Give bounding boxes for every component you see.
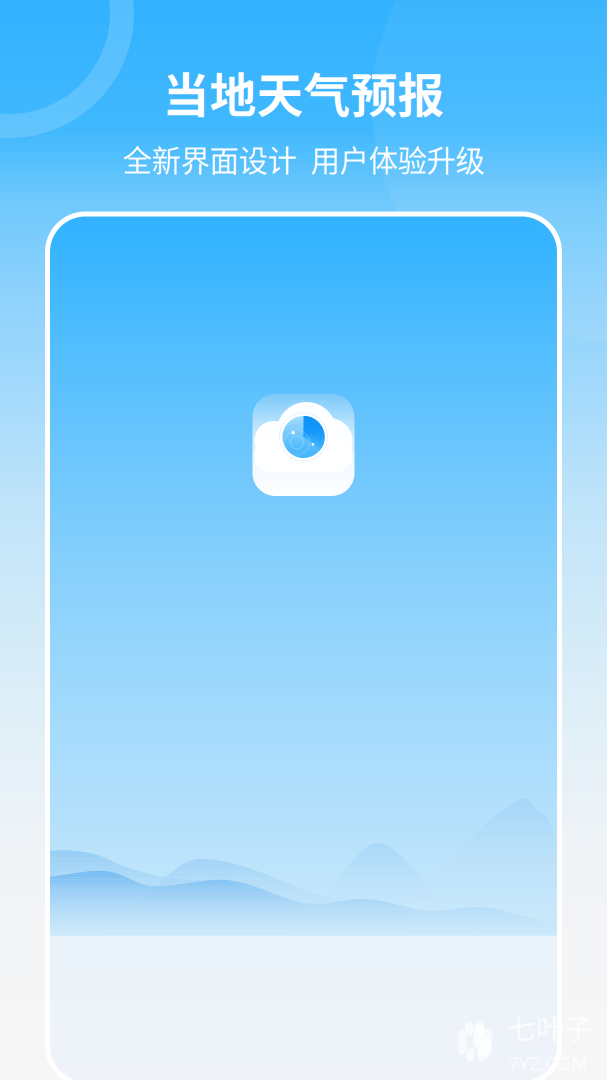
- staticText: 7YZ.COM: [508, 1050, 588, 1076]
- staticText: 当地天气预报: [162, 58, 444, 126]
- staticText: 全新界面设计 用户体验升级: [122, 138, 484, 180]
- staticText: 七叶子: [508, 1007, 592, 1047]
